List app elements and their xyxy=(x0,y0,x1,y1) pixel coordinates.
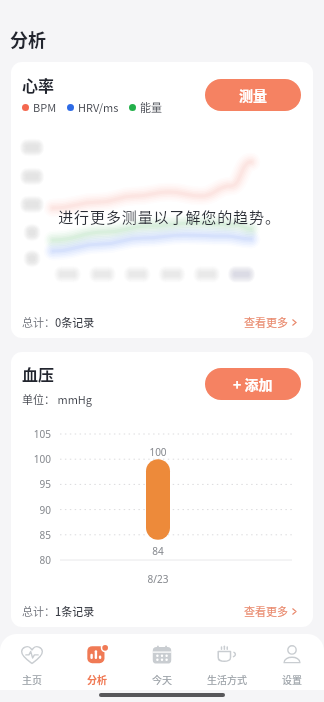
staticText: 0条记录 xyxy=(55,314,95,330)
staticText: 血压 xyxy=(22,362,55,385)
staticText: 进行更多测量以了解您的趋势。 xyxy=(58,206,281,228)
staticText: HRV/ms xyxy=(78,99,119,115)
staticText: 查看更多 xyxy=(244,603,288,619)
staticText: 能量 xyxy=(140,99,162,115)
staticText: 总计： xyxy=(22,314,55,330)
button[interactable]: Today xyxy=(129,645,194,686)
staticText: 80 xyxy=(11,553,51,567)
staticText: 主页 xyxy=(22,672,42,686)
staticText: 生活方式 xyxy=(207,672,247,686)
staticText: 1条记录 xyxy=(55,603,95,619)
staticText: BPM xyxy=(33,99,57,115)
staticText: 100 xyxy=(138,445,178,459)
staticText: 分析 xyxy=(10,26,46,52)
staticText: 查看更多 xyxy=(244,314,288,330)
staticText: 总计： xyxy=(22,603,55,619)
button[interactable]: Analysis xyxy=(64,645,129,686)
staticText: 95 xyxy=(11,477,51,491)
staticText: + 添加 xyxy=(233,374,273,394)
button[interactable]: 测量 xyxy=(205,79,301,111)
button[interactable]: 查看更多 xyxy=(244,314,298,330)
staticText: 分析 xyxy=(87,672,107,686)
staticText: 8/23 xyxy=(138,572,178,586)
button[interactable]: 查看更多 xyxy=(244,603,298,619)
button[interactable]: + 添加 xyxy=(205,368,301,400)
staticText: 105 xyxy=(11,427,51,441)
staticText: 90 xyxy=(11,503,51,517)
staticText: 心率 xyxy=(22,73,55,96)
staticText: 85 xyxy=(11,528,51,542)
button[interactable]: Settings xyxy=(259,645,324,686)
staticText: 测量 xyxy=(239,85,267,105)
button[interactable]: Lifestyle xyxy=(194,645,259,686)
staticText: 单位： mmHg xyxy=(22,391,93,407)
button[interactable]: Home xyxy=(0,645,64,686)
staticText: 100 xyxy=(11,452,51,466)
staticText: 设置 xyxy=(282,672,302,686)
staticText: 今天 xyxy=(152,672,172,686)
staticText: 84 xyxy=(138,544,178,558)
